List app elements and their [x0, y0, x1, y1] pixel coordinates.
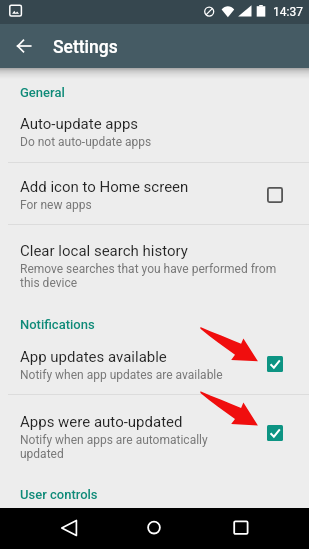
staticText: Apps were auto-updated [20, 413, 183, 431]
staticText: For new apps [20, 198, 92, 212]
staticText: 14:37 [273, 5, 303, 19]
button[interactable]: Clear local search history [0, 231, 309, 296]
button[interactable]: Navigate up [4, 26, 44, 66]
staticText: User controls [20, 487, 98, 502]
staticText: Notify when apps are automatically updat… [20, 433, 252, 461]
staticText: General [20, 85, 65, 100]
button[interactable]: Recent apps [219, 508, 263, 549]
staticText: Settings [53, 37, 118, 58]
staticText: Auto-update apps [20, 115, 139, 133]
staticText: App updates available [20, 348, 167, 366]
staticText: Remove searches that you have performed … [20, 262, 290, 290]
button [0, 68, 309, 94]
staticText: Do not auto-update apps [20, 135, 152, 149]
staticText: Notify when app updates are available [20, 368, 252, 382]
staticText: Notifications [20, 317, 95, 332]
button[interactable]: Checked [267, 425, 283, 441]
button[interactable]: Apps were auto-updated [0, 402, 309, 467]
button[interactable]: Unchecked [267, 187, 283, 203]
button[interactable]: Home [132, 508, 176, 549]
button[interactable]: Auto-update apps [0, 104, 309, 163]
button[interactable]: Back [47, 508, 91, 549]
button[interactable]: App updates available [0, 337, 309, 394]
button[interactable]: Checked [267, 356, 283, 372]
button[interactable]: Add icon to Home screen [0, 167, 309, 225]
staticText: Add icon to Home screen [20, 178, 189, 196]
staticText: Clear local search history [20, 242, 188, 260]
